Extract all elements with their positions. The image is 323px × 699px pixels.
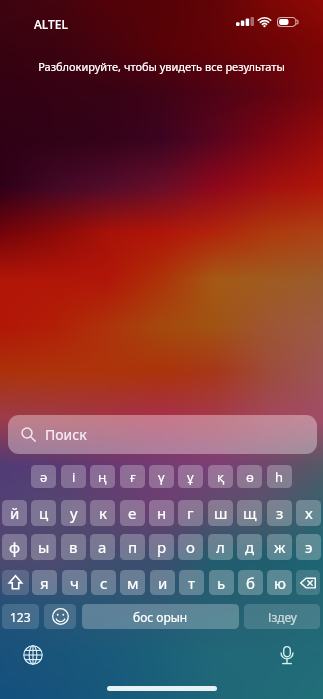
button[interactable]: т	[179, 570, 204, 595]
staticText: щ	[243, 503, 257, 523]
staticText: т	[188, 573, 195, 593]
staticText: ш	[214, 503, 228, 523]
staticText: ң	[98, 468, 107, 486]
button[interactable]: ф	[2, 534, 27, 560]
staticText: ь	[217, 573, 226, 593]
staticText: ц	[39, 503, 49, 523]
button[interactable]: ч	[62, 570, 87, 595]
button[interactable]: в	[61, 534, 86, 560]
staticText: б	[246, 573, 255, 593]
staticText: ү	[158, 468, 165, 486]
button[interactable]: ш	[208, 500, 233, 526]
button[interactable]: б	[238, 570, 263, 595]
staticText: г	[187, 503, 194, 523]
staticText: ғ	[130, 468, 136, 486]
staticText: ұ	[187, 468, 194, 486]
button[interactable]: с	[91, 570, 116, 595]
staticText: і	[72, 468, 76, 486]
staticText: ALTEL	[34, 16, 68, 32]
button[interactable]: я	[32, 570, 57, 595]
button[interactable]: ө	[237, 465, 262, 488]
staticText: л	[216, 537, 225, 557]
button[interactable]: х	[296, 500, 321, 526]
button[interactable]: Поиск	[8, 415, 317, 454]
staticText: я	[40, 573, 49, 593]
button[interactable]: п	[120, 534, 145, 560]
button[interactable]: ң	[90, 465, 115, 488]
staticText: Іздеу	[268, 609, 297, 625]
staticText: ж	[274, 537, 286, 557]
staticText: е	[128, 503, 137, 523]
staticText: ф	[9, 537, 21, 557]
button[interactable]: Dictation	[274, 642, 300, 668]
button[interactable]: Іздеу	[244, 604, 320, 629]
button[interactable]: ұ	[178, 465, 203, 488]
staticText: һ	[275, 468, 284, 486]
staticText: у	[70, 503, 78, 523]
button[interactable]: о	[178, 534, 203, 560]
staticText: р	[157, 537, 167, 557]
button[interactable]: е	[120, 500, 145, 526]
staticText: ч	[70, 573, 79, 593]
staticText: с	[100, 573, 108, 593]
button[interactable]: у	[61, 500, 86, 526]
staticText: бос орын	[133, 609, 188, 625]
button[interactable]: 123	[2, 604, 39, 629]
staticText: ы	[38, 537, 50, 557]
button[interactable]: ж	[267, 534, 292, 560]
staticText: Разблокируйте, чтобы увидеть все результ…	[0, 59, 323, 74]
button[interactable]: к	[90, 500, 115, 526]
staticText: м	[127, 573, 139, 593]
button[interactable]: Backspace	[296, 570, 320, 595]
staticText: э	[305, 537, 313, 557]
button[interactable]: ы	[31, 534, 56, 560]
button[interactable]: қ	[208, 465, 233, 488]
button[interactable]: һ	[267, 465, 292, 488]
button[interactable]: р	[149, 534, 174, 560]
button[interactable]: ғ	[120, 465, 145, 488]
staticText: 123	[10, 609, 31, 625]
staticText: қ	[217, 468, 225, 486]
button[interactable]: ц	[31, 500, 56, 526]
button[interactable]: н	[149, 500, 174, 526]
staticText: и	[158, 573, 168, 593]
staticText: ә	[40, 468, 48, 486]
button[interactable]: л	[208, 534, 233, 560]
staticText: п	[128, 537, 138, 557]
button[interactable]: бос орын	[82, 604, 239, 629]
staticText: о	[186, 537, 195, 557]
button[interactable]: э	[296, 534, 321, 560]
button[interactable]: ә	[31, 465, 56, 488]
staticText: х	[305, 503, 313, 523]
staticText: Поиск	[45, 425, 87, 444]
button[interactable]: Shift	[2, 570, 29, 595]
button[interactable]: ю	[267, 570, 292, 595]
staticText: й	[10, 503, 20, 523]
button[interactable]: д	[237, 534, 262, 560]
button[interactable]: Switch keyboard language	[20, 642, 46, 668]
button[interactable]: і	[61, 465, 86, 488]
button[interactable]: и	[150, 570, 175, 595]
button[interactable]: ь	[209, 570, 234, 595]
staticText: ю	[274, 573, 286, 593]
staticText: ө	[246, 468, 254, 486]
staticText: в	[69, 537, 78, 557]
staticText: к	[99, 503, 107, 523]
button[interactable]: з	[267, 500, 292, 526]
button[interactable]: а	[90, 534, 115, 560]
button[interactable]: ү	[149, 465, 174, 488]
staticText: н	[157, 503, 167, 523]
staticText: д	[245, 537, 255, 557]
button[interactable]: щ	[237, 500, 262, 526]
button[interactable]: г	[178, 500, 203, 526]
button[interactable]: й	[2, 500, 27, 526]
button[interactable]: м	[120, 570, 145, 595]
staticText: з	[276, 503, 284, 523]
button[interactable]: Emoji	[44, 604, 76, 629]
staticText: а	[98, 537, 107, 557]
